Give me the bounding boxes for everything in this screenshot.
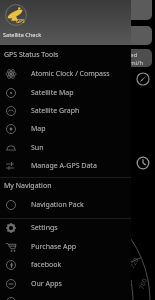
button[interactable]: Our Apps — [0, 275, 131, 293]
staticText: ed — [130, 51, 138, 59]
staticText: Purchase App — [31, 242, 77, 252]
button[interactable]: Satellite Graph — [0, 102, 131, 120]
staticText: GPS Status Tools — [4, 50, 59, 60]
button[interactable]: GPS — [0, 0, 131, 45]
staticText: Sun — [31, 143, 44, 153]
button[interactable]: Sun — [0, 139, 131, 157]
button[interactable] — [0, 293, 131, 300]
staticText: Settings — [31, 223, 58, 233]
staticText: Our Apps — [31, 279, 62, 289]
button[interactable]: Purchase App — [0, 238, 131, 256]
staticText: My Navigation — [4, 181, 52, 191]
button[interactable]: Navigation Pack — [0, 196, 131, 214]
staticText: Satellite Map — [31, 88, 74, 98]
button[interactable]: facebook — [0, 256, 131, 274]
staticText: Atomic Clock / Compass — [31, 69, 110, 79]
staticText: mi/h — [130, 59, 144, 67]
button[interactable]: Clock — [136, 156, 150, 170]
staticText: Navigation Pack — [31, 200, 84, 210]
staticText: GPS — [16, 18, 25, 24]
button[interactable]: Satellite Map — [0, 84, 131, 102]
staticText: Satellite Graph — [31, 106, 80, 116]
button[interactable]: Map — [0, 120, 131, 138]
button[interactable]: Settings — [0, 219, 131, 237]
staticText: facebook — [31, 260, 62, 270]
staticText: 760 — [137, 276, 149, 291]
staticText: Manage A-GPS Data — [31, 161, 97, 171]
staticText: 720 — [127, 255, 141, 270]
button[interactable]: Atomic Clock / Compass — [0, 65, 131, 83]
staticText: Satellite Check — [3, 31, 42, 39]
staticText: Map — [31, 124, 46, 134]
button[interactable]: Manage A-GPS Data — [0, 157, 131, 175]
button[interactable]: Compass — [136, 72, 150, 86]
